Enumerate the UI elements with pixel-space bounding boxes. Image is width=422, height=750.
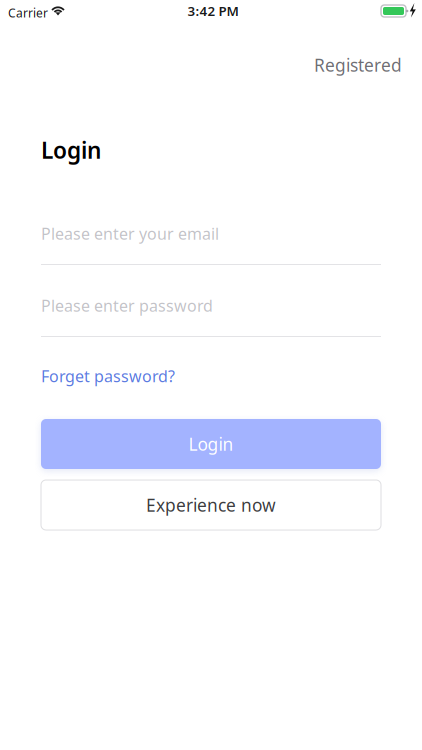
button[interactable]: Please enter your email	[41, 223, 381, 265]
button[interactable]: Registered	[302, 50, 402, 80]
staticText: Forget password?	[41, 365, 175, 387]
staticText: 3:42 PM	[187, 2, 238, 20]
staticText: Please enter password	[41, 295, 213, 316]
staticText: Carrier	[8, 5, 48, 21]
button[interactable]: Experience now	[41, 480, 381, 530]
staticText: Login	[188, 432, 233, 455]
staticText: Experience now	[146, 493, 276, 516]
staticText: Please enter your email	[41, 223, 219, 244]
button[interactable]: Forget password?	[41, 363, 191, 389]
button[interactable]: Please enter password	[41, 295, 381, 337]
button[interactable]: Login	[41, 419, 381, 469]
staticText: Login	[41, 135, 101, 165]
staticText: Registered	[314, 53, 402, 76]
